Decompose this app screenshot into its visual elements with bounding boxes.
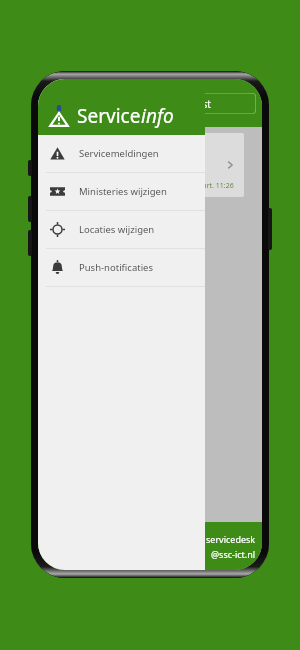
button[interactable]: Locaties wijzigen [38,211,205,248]
staticText: Service [77,103,141,129]
staticText: servicedesk [206,533,256,545]
button[interactable]: Push-notificaties [38,249,205,286]
other: Locaties wijzigen [50,222,65,237]
staticText: @ssc-ict.nl [211,548,256,560]
other: Push-notificaties [50,260,65,275]
staticText: Locaties wijzigen [79,223,155,236]
staticText: vr 23 mrt. 11:26 [182,181,234,191]
other: Servicemeldingen [50,146,65,161]
button[interactable]: gelost [170,93,256,114]
button[interactable]: vr 23 mrt. 11:26 [44,133,244,197]
other: Ministeries wijzigen [50,184,65,199]
staticText: info [141,103,174,129]
button[interactable]: Servicemeldingen [38,135,205,172]
staticText: gelost [182,97,211,111]
staticText: Push-notificaties [79,261,153,274]
staticText: Ministeries wijzigen [79,185,167,198]
button[interactable]: Ministeries wijzigen [38,173,205,210]
staticText: Servicemeldingen [79,147,159,160]
